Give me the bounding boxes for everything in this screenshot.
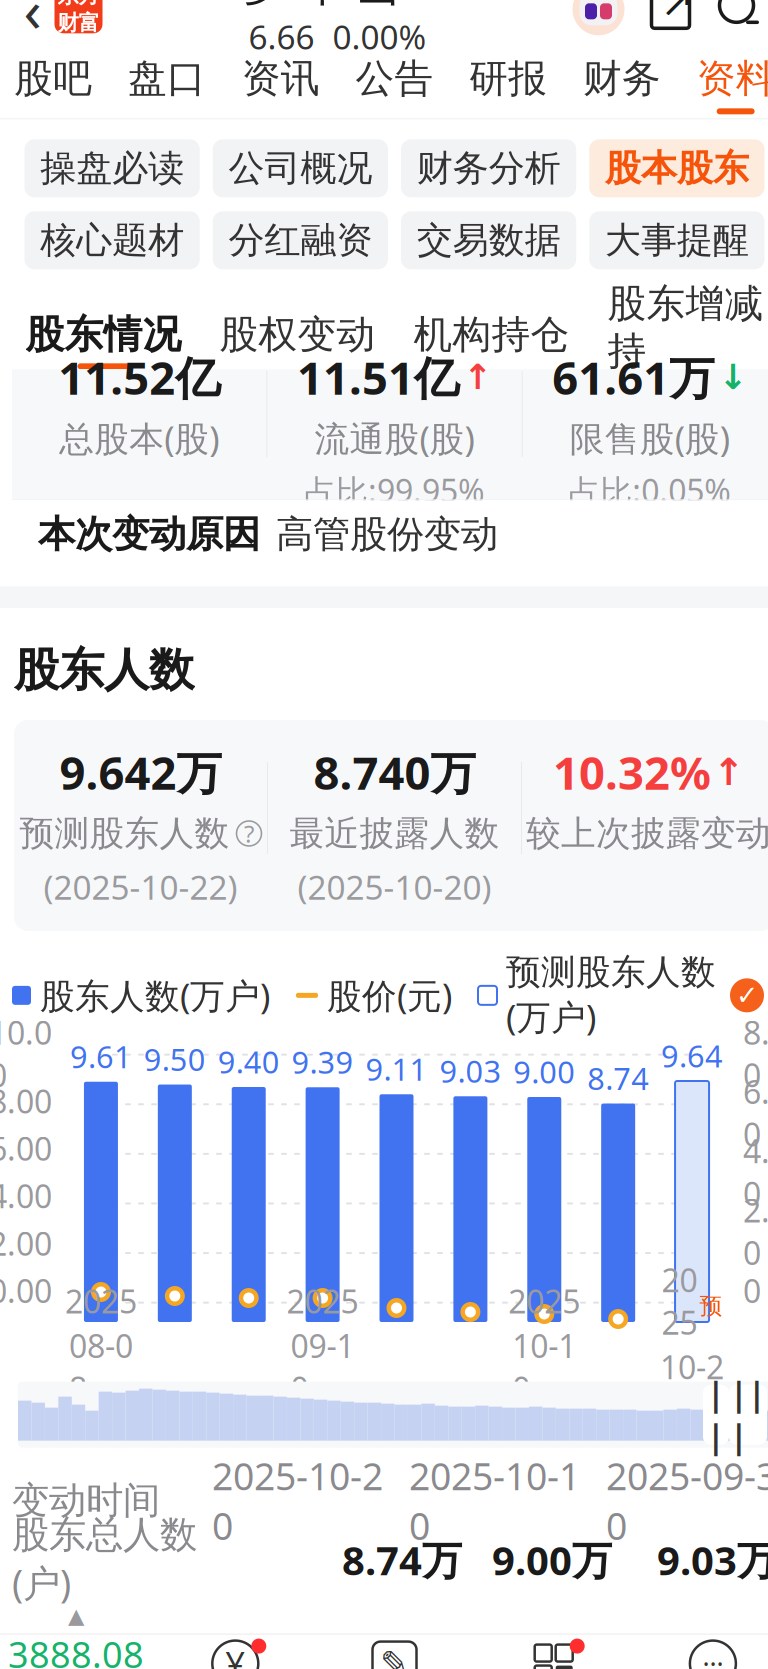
staticText: 6.00 (0, 1127, 52, 1170)
staticText: 9.50 (144, 1039, 206, 1079)
staticText: 10-22 (660, 1346, 724, 1431)
button[interactable]: ✎ (315, 1635, 474, 1669)
button[interactable]: AI助手 (572, 0, 624, 35)
staticText: 大事提醒 (605, 218, 749, 262)
staticText: 4.00 (743, 1130, 768, 1215)
staticText: 资讯 (242, 55, 320, 102)
button[interactable]: 盘口 (110, 46, 224, 118)
staticText: ‹ (23, 0, 41, 48)
button[interactable]: 大事提醒 (589, 211, 764, 269)
staticText: 0.00 (0, 1269, 52, 1312)
staticText: 流通股(股) (314, 415, 474, 461)
staticText: 4.00 (0, 1175, 52, 1217)
staticText: 9.03 (439, 1050, 501, 1091)
staticText: 9.11 (365, 1048, 427, 1089)
staticText: ↑ (713, 751, 744, 793)
staticText: 核心题材 (40, 218, 184, 262)
button[interactable]: 资讯 (224, 46, 338, 118)
staticText: ↑ (463, 357, 492, 397)
staticText: 9.64 (661, 1035, 723, 1076)
button[interactable]: Search (716, 0, 764, 33)
staticText: 盘口 (128, 55, 206, 102)
staticText: 研报 (469, 55, 547, 102)
staticText: 占比:0.05% (568, 469, 731, 512)
staticText: 东方 (57, 0, 99, 9)
staticText: 罗 牛 山 (244, 0, 399, 12)
staticText: 交易数据 (417, 218, 561, 262)
staticText: 9.39 (292, 1041, 354, 1082)
staticText: 11.51亿 (297, 347, 459, 407)
staticText: 08-08 (69, 1324, 133, 1409)
button[interactable]: 公司概况 (213, 139, 388, 197)
button[interactable]: 上证指数 (0, 1604, 156, 1669)
button[interactable]: 调整范围 (703, 1385, 767, 1445)
staticText: 10-10 (512, 1324, 576, 1409)
staticText: 机构持仓 (413, 311, 569, 358)
staticText: 9.00 (513, 1051, 575, 1092)
staticText: (2025-10-20) (297, 865, 491, 909)
staticText: 变动时间 (12, 1478, 160, 1524)
button[interactable]: 核心题材 (24, 211, 200, 269)
staticText: 预测股东人数(万户) (506, 951, 716, 1040)
button[interactable]: Share (646, 0, 694, 33)
button[interactable]: 分红融资 (213, 211, 388, 269)
staticText: 9.61 (70, 1036, 132, 1077)
staticText: 2025-10-20 (212, 1451, 383, 1550)
staticText: 61.61万 (552, 347, 714, 407)
button[interactable]: 公告 (338, 46, 451, 118)
button[interactable]: 财务 (565, 46, 679, 118)
staticText: 操盘必读 (40, 146, 184, 190)
button[interactable]: 切换预测 (730, 978, 764, 1012)
staticText: 股东增减持 (607, 280, 763, 375)
button[interactable]: 研报 (451, 46, 565, 118)
staticText: 2025 (662, 1259, 698, 1344)
button[interactable]: 操盘必读 (24, 139, 200, 197)
staticText: 股东情况 (25, 311, 181, 358)
staticText: 8.00 (743, 1011, 768, 1096)
staticText: 股东人数 (14, 642, 194, 698)
staticText: 财务分析 (417, 146, 561, 190)
button[interactable]: 东方财富 (54, 0, 102, 33)
staticText: 2025-09-30 (606, 1451, 768, 1550)
button[interactable]: 股东增减持 (588, 291, 768, 369)
staticText: 股东总人数(户) (12, 1512, 197, 1607)
staticText: 2025 (65, 1280, 137, 1322)
button[interactable]: 功能 (474, 1635, 633, 1669)
staticText: 限售股(股) (570, 415, 730, 461)
staticText: 总股本(股) (59, 415, 219, 461)
staticText: 股吧 (14, 55, 92, 102)
staticText: 2.00 (743, 1189, 768, 1274)
button[interactable]: 机构持仓 (394, 291, 588, 369)
staticText: 分红融资 (228, 218, 372, 262)
staticText: 6.66 0.00% (248, 14, 426, 59)
staticText: ✎ (380, 1644, 409, 1669)
button[interactable]: ··· (633, 1635, 768, 1669)
staticText: 预测股东人数 (19, 812, 229, 855)
button[interactable]: 股东情况 (6, 291, 200, 369)
staticText: 09-10 (291, 1324, 355, 1409)
staticText: 2025 (508, 1280, 580, 1322)
button[interactable]: 股权变动 (200, 291, 394, 369)
button[interactable]: 股本股东 (589, 139, 764, 197)
staticText: ▲ (68, 1604, 84, 1628)
staticText: 2025 (287, 1280, 359, 1322)
staticText: 9.40 (218, 1041, 280, 1082)
staticText: 8.740万 (313, 742, 475, 802)
button[interactable]: 交易数据 (401, 211, 576, 269)
staticText: 股本股东 (605, 146, 749, 190)
staticText: 资料 (697, 55, 768, 102)
staticText: 10.32% (553, 742, 711, 802)
staticText: 高管股份变动 (276, 511, 498, 557)
button[interactable]: ¥ (156, 1635, 315, 1669)
staticText: 本次变动原因 (38, 511, 260, 557)
staticText: 9.642万 (59, 742, 221, 802)
staticText: 8.00 (0, 1080, 52, 1122)
button[interactable]: 财务分析 (401, 139, 576, 197)
staticText: 公司概况 (228, 146, 372, 190)
staticText: 较上次披露变动 (526, 812, 768, 855)
button[interactable]: Back (10, 0, 54, 39)
staticText: 股权变动 (219, 311, 375, 358)
button[interactable]: 资料 (679, 46, 768, 118)
staticText: || (707, 1372, 725, 1457)
button[interactable]: 股吧 (0, 46, 110, 118)
